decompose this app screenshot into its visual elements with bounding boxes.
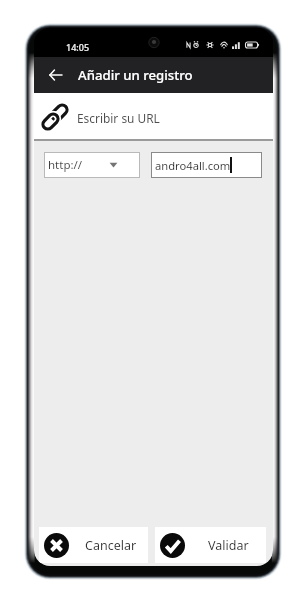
staticText: andro4all.com (155, 158, 231, 173)
staticText: Validar (208, 537, 249, 554)
staticText: Añadir un registro (78, 66, 193, 84)
button[interactable]: Back (39, 57, 72, 93)
staticText: 14:05 (66, 41, 90, 53)
button[interactable]: Cancelar (39, 527, 148, 563)
button[interactable]: andro4all.com (151, 152, 262, 178)
button[interactable]: Validar (155, 527, 266, 563)
staticText: Escribir su URL (77, 110, 160, 126)
button[interactable]: http:// (44, 152, 140, 178)
staticText: Cancelar (85, 537, 137, 554)
staticText: http:// (48, 157, 83, 173)
